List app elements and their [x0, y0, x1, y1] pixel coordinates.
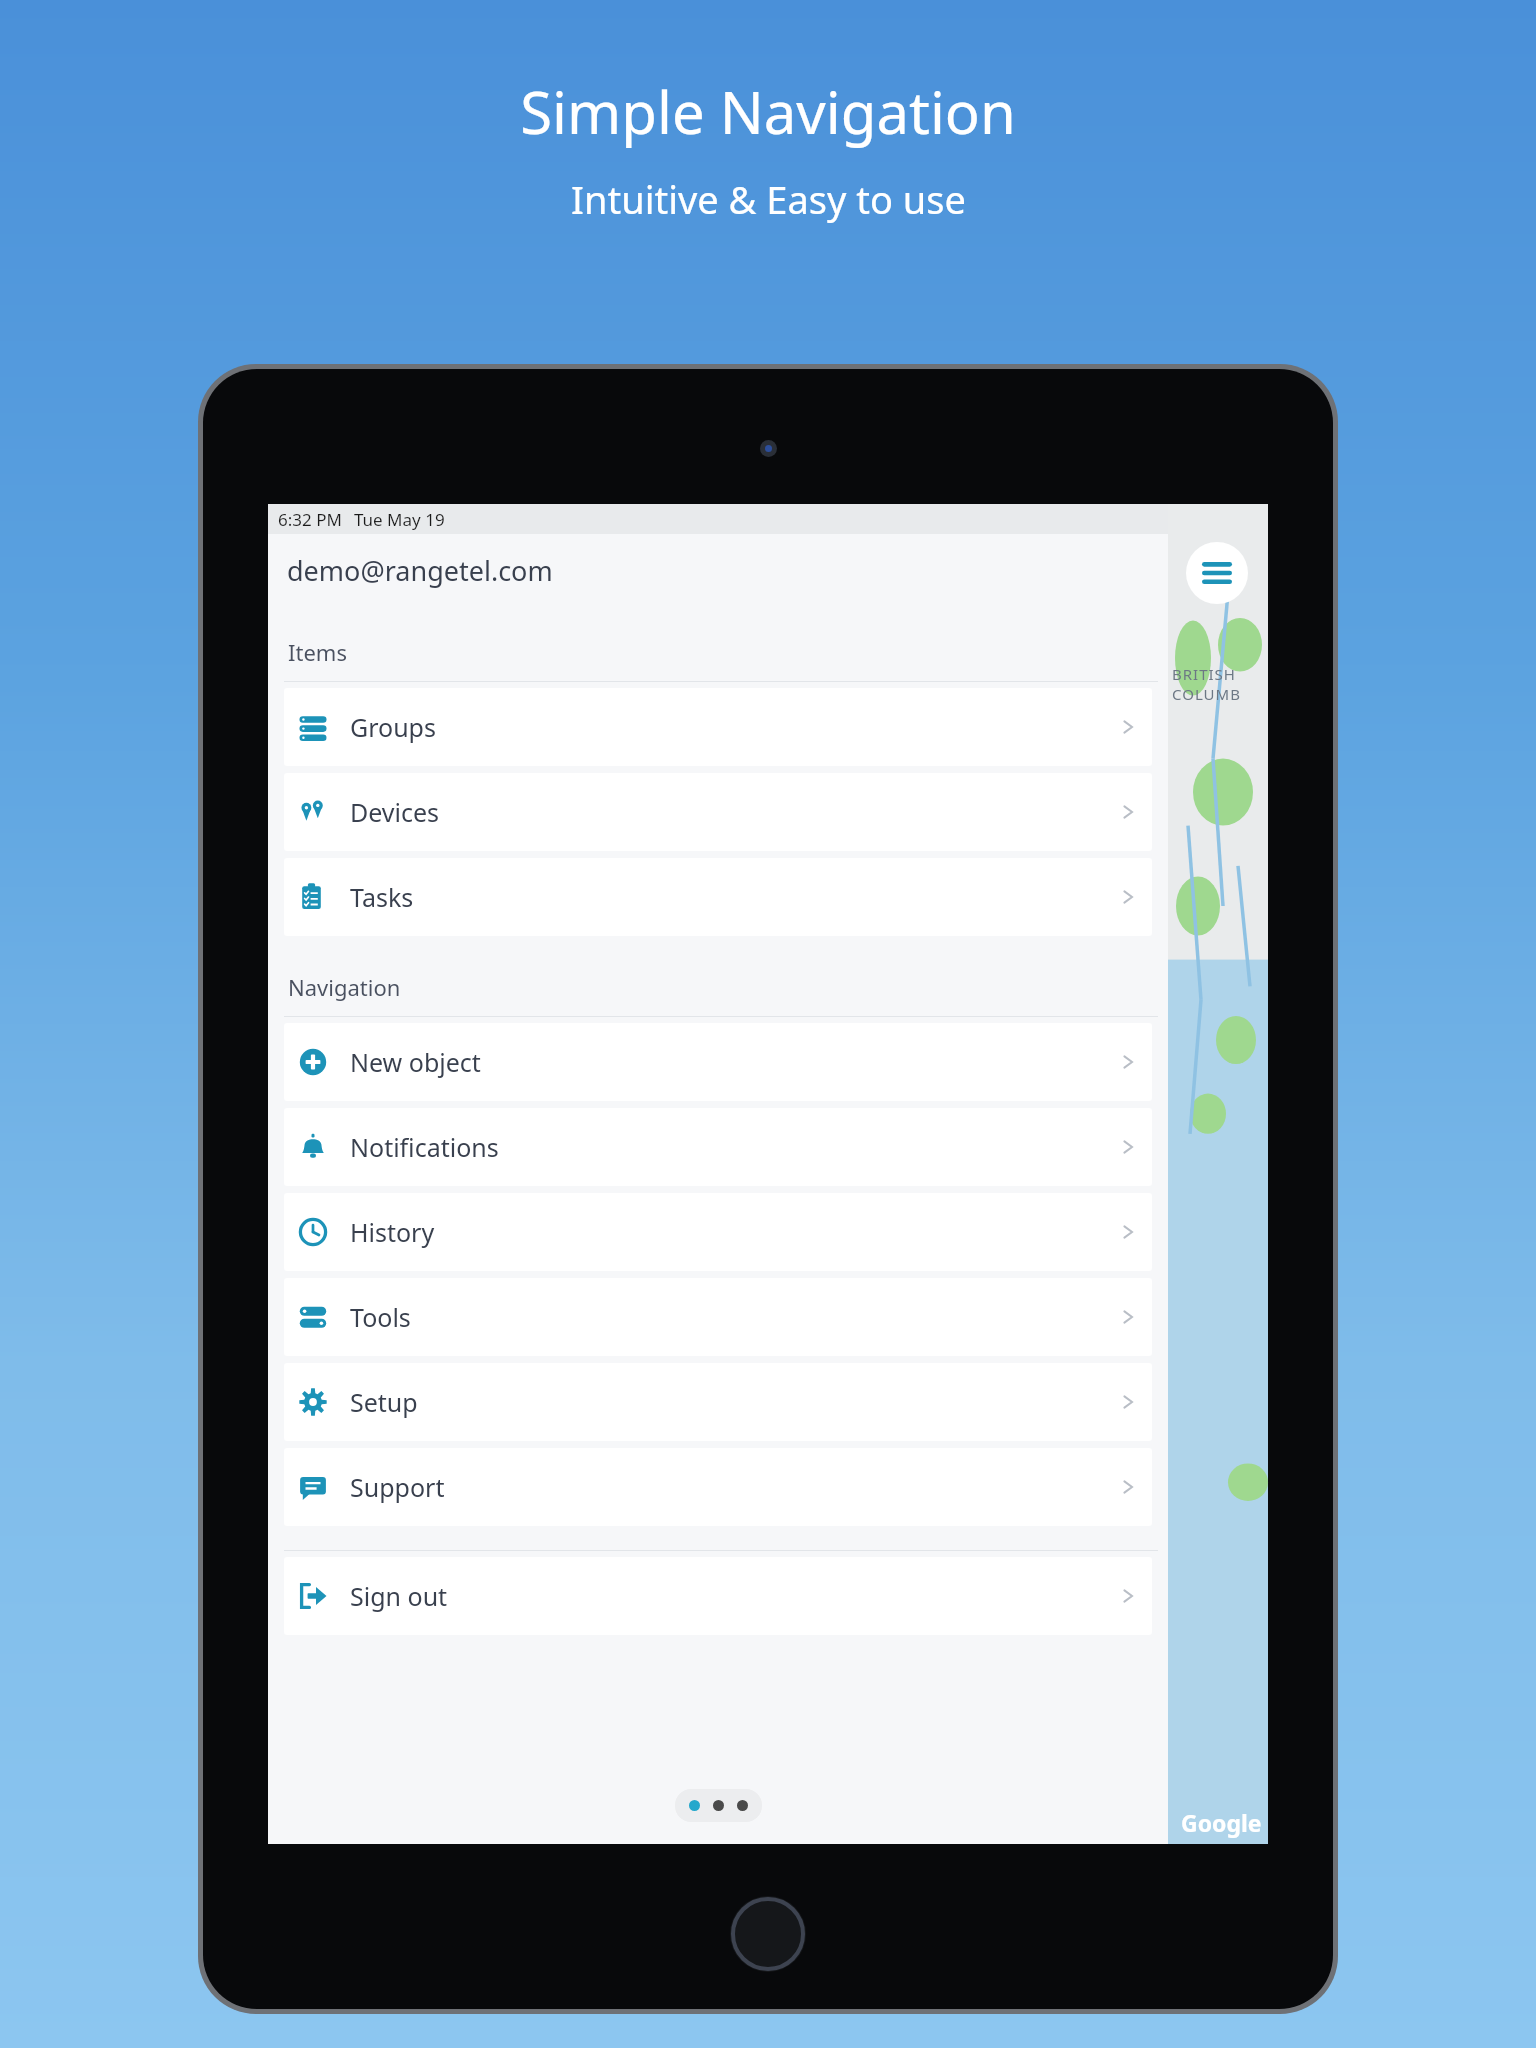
staticText: demo@rangetel.com: [287, 552, 553, 589]
button[interactable]: Support: [284, 1448, 1152, 1526]
staticText: Notifications: [350, 1130, 499, 1164]
staticText: Tasks: [350, 880, 414, 914]
button[interactable]: History: [284, 1193, 1152, 1271]
button[interactable]: Tools: [284, 1278, 1152, 1356]
staticText: Setup: [350, 1385, 418, 1419]
staticText: Support: [350, 1470, 445, 1504]
staticText: Sign out: [350, 1579, 448, 1613]
staticText: Groups: [350, 710, 436, 744]
button[interactable]: Groups: [284, 688, 1152, 766]
button[interactable]: Devices: [284, 773, 1152, 851]
staticText: COLUMB: [1172, 684, 1241, 704]
button[interactable]: Setup: [284, 1363, 1152, 1441]
staticText: Items: [288, 637, 347, 667]
staticText: BRITISH: [1172, 664, 1236, 684]
staticText: History: [350, 1215, 435, 1249]
button[interactable]: Sign out: [284, 1557, 1152, 1635]
staticText: Intuitive & Easy to use: [571, 173, 966, 225]
button[interactable]: New object: [284, 1023, 1152, 1101]
button[interactable]: Notifications: [284, 1108, 1152, 1186]
staticText: Devices: [350, 795, 440, 829]
staticText: New object: [350, 1045, 481, 1079]
staticText: Tue May 19: [354, 508, 445, 531]
staticText: Tools: [350, 1300, 411, 1334]
staticText: Google: [1181, 1807, 1262, 1838]
staticText: Simple Navigation: [520, 72, 1016, 151]
button[interactable]: Tasks: [284, 858, 1152, 936]
button[interactable]: Open menu: [1186, 542, 1248, 604]
staticText: 6:32 PM: [278, 508, 342, 531]
staticText: Navigation: [288, 972, 401, 1002]
